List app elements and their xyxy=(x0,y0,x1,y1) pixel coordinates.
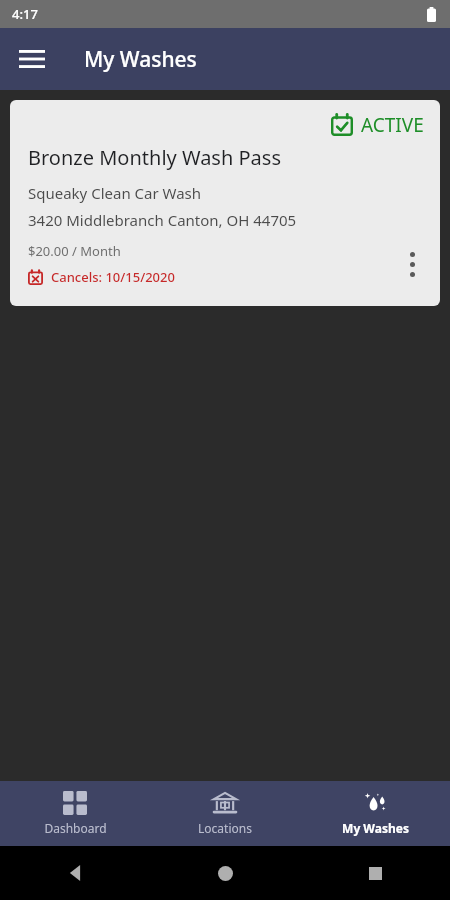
button[interactable]: My Washes xyxy=(300,783,450,844)
button[interactable]: Back xyxy=(0,865,150,881)
button[interactable]: Open navigation menu xyxy=(8,35,56,83)
staticText: $20.00 / Month xyxy=(28,242,121,260)
button[interactable]: Recent apps xyxy=(300,867,450,880)
button[interactable]: More options xyxy=(392,240,432,288)
button[interactable]: Dashboard xyxy=(0,783,150,844)
staticText: 4:17 xyxy=(12,5,38,23)
staticText: My Washes xyxy=(342,820,409,836)
staticText: Squeaky Clean Car Wash xyxy=(28,183,202,203)
staticText: Locations xyxy=(198,820,252,836)
button[interactable]: ACTIVE xyxy=(10,100,440,306)
staticText: Cancels: 10/15/2020 xyxy=(51,268,175,286)
button[interactable]: Home xyxy=(150,866,300,881)
staticText: Bronze Monthly Wash Pass xyxy=(28,144,281,171)
staticText: My Washes xyxy=(84,45,197,74)
staticText: Dashboard xyxy=(44,820,107,836)
staticText: ACTIVE xyxy=(361,112,424,138)
staticText: 3420 Middlebranch Canton, OH 44705 xyxy=(28,210,297,230)
button[interactable]: Locations xyxy=(150,783,300,844)
